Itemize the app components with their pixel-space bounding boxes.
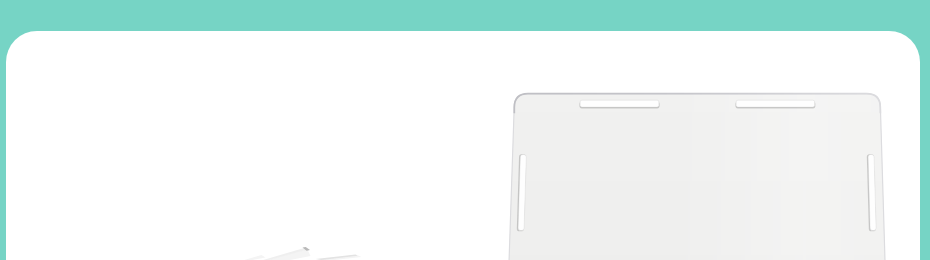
button[interactable]: Product photo [6, 31, 920, 260]
